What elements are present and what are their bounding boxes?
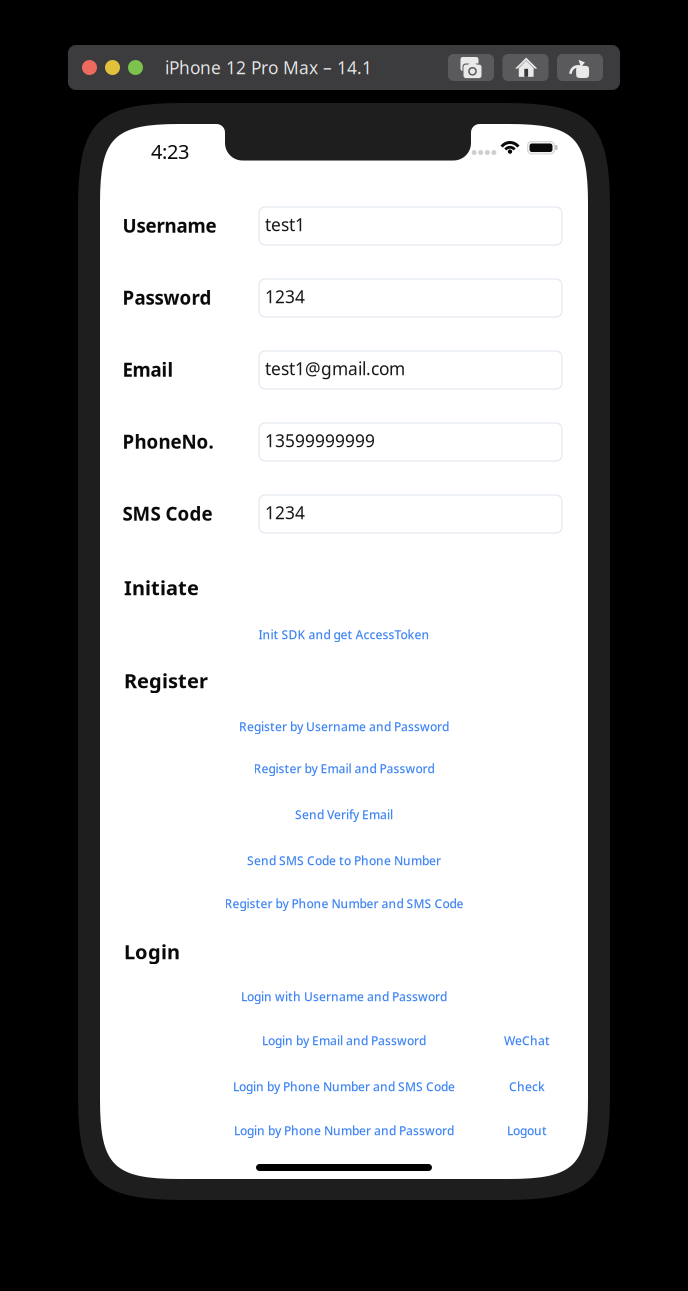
button[interactable]: Register by Email and Password [247, 755, 440, 781]
button[interactable]: Home [502, 54, 548, 81]
button[interactable]: Register by Phone Number and SMS Code [218, 890, 469, 916]
staticText: Login by Phone Number and Password [234, 1122, 454, 1138]
button[interactable]: Login with Username and Password [235, 983, 453, 1009]
staticText: Login by Phone Number and SMS Code [233, 1078, 455, 1094]
staticText: Register by Email and Password [253, 760, 434, 776]
staticText: Init SDK and get AccessToken [258, 626, 429, 642]
button[interactable]: Login by Phone Number and SMS Code [227, 1073, 461, 1099]
staticText: Send Verify Email [295, 806, 393, 822]
staticText: Username [122, 213, 216, 238]
staticText: Login [124, 938, 180, 965]
staticText: 4:23 [151, 138, 189, 165]
staticText: Email [122, 357, 173, 382]
staticText: SMS Code [122, 501, 212, 526]
staticText: Login with Username and Password [241, 988, 447, 1004]
staticText: 1234 [265, 285, 305, 308]
staticText: Register by Username and Password [239, 718, 449, 734]
staticText: WeChat [504, 1032, 550, 1048]
staticText: 1234 [265, 501, 305, 524]
staticText: Initiate [124, 574, 199, 601]
staticText: Check [509, 1078, 545, 1094]
button[interactable]: Send SMS Code to Phone Number [241, 847, 447, 873]
button[interactable]: Check [503, 1073, 551, 1099]
button[interactable]: Share [557, 54, 603, 81]
staticText: 13599999999 [265, 429, 375, 452]
staticText: Register by Phone Number and SMS Code [224, 895, 463, 911]
button[interactable]: Register by Username and Password [233, 713, 455, 739]
staticText: Password [122, 285, 211, 310]
staticText: Send SMS Code to Phone Number [247, 852, 441, 868]
staticText: iPhone 12 Pro Max – 14.1 [165, 56, 372, 79]
staticText: test1 [265, 213, 305, 236]
staticText: test1@gmail.com [265, 357, 405, 380]
button[interactable]: Send Verify Email [289, 801, 399, 827]
staticText: Login by Email and Password [262, 1032, 426, 1048]
button[interactable]: Logout [501, 1117, 553, 1143]
button[interactable]: WeChat [498, 1027, 556, 1053]
button[interactable]: Init SDK and get AccessToken [252, 621, 435, 647]
button[interactable]: Login by Email and Password [256, 1027, 432, 1053]
button[interactable]: Screenshot [448, 54, 494, 81]
staticText: PhoneNo. [122, 429, 213, 454]
button[interactable]: Login by Phone Number and Password [228, 1117, 460, 1143]
staticText: Logout [507, 1122, 547, 1138]
staticText: Register [124, 667, 208, 694]
